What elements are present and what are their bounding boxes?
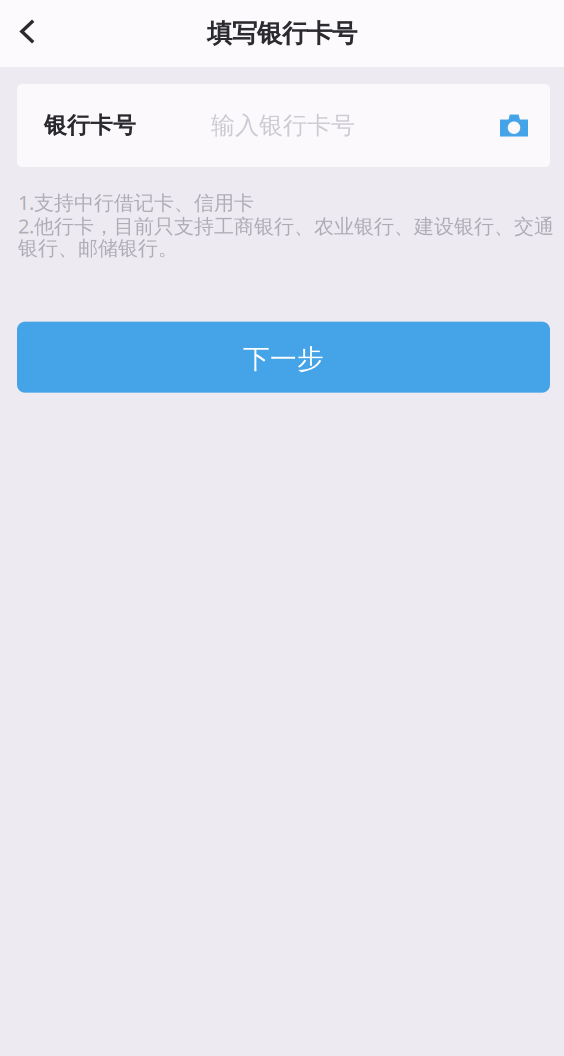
staticText: 银行、邮储银行。 bbox=[18, 236, 178, 261]
staticText: 2.他行卡，目前只支持工商银行、农业银行、建设银行、交通 bbox=[18, 213, 554, 239]
button[interactable]: Back bbox=[0, 0, 53, 67]
staticText: 1.支持中行借记卡、信用卡 bbox=[18, 189, 254, 216]
staticText: 下一步 bbox=[243, 343, 324, 376]
staticText: 填写银行卡号 bbox=[207, 18, 357, 49]
staticText: 输入银行卡号 bbox=[211, 111, 355, 140]
button[interactable]: 下一步 bbox=[17, 322, 550, 393]
staticText: 银行卡号 bbox=[44, 112, 136, 139]
button[interactable]: Scan card bbox=[500, 114, 528, 136]
